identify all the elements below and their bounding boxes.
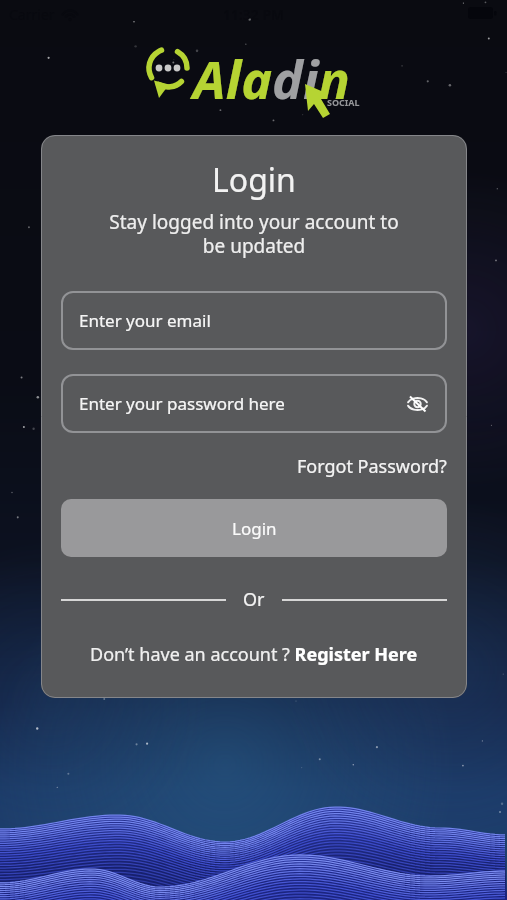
staticText: Enter your password here bbox=[79, 392, 285, 415]
staticText: Login bbox=[232, 517, 277, 540]
staticText: Enter your email bbox=[79, 309, 211, 332]
staticText: Or bbox=[243, 587, 265, 612]
staticText: Login bbox=[212, 158, 296, 202]
button[interactable]: Enter your password here bbox=[61, 374, 447, 433]
button[interactable]: Login bbox=[61, 499, 447, 557]
button[interactable]: Don’t have an account ? Register Here bbox=[90, 642, 418, 667]
button[interactable]: Forgot Password? bbox=[297, 454, 447, 479]
staticText: SOCIAL bbox=[327, 96, 360, 108]
staticText: Stay logged into your account to be upda… bbox=[109, 209, 399, 258]
staticText: Aladin bbox=[193, 43, 350, 114]
button[interactable]: Enter your email bbox=[61, 291, 447, 350]
